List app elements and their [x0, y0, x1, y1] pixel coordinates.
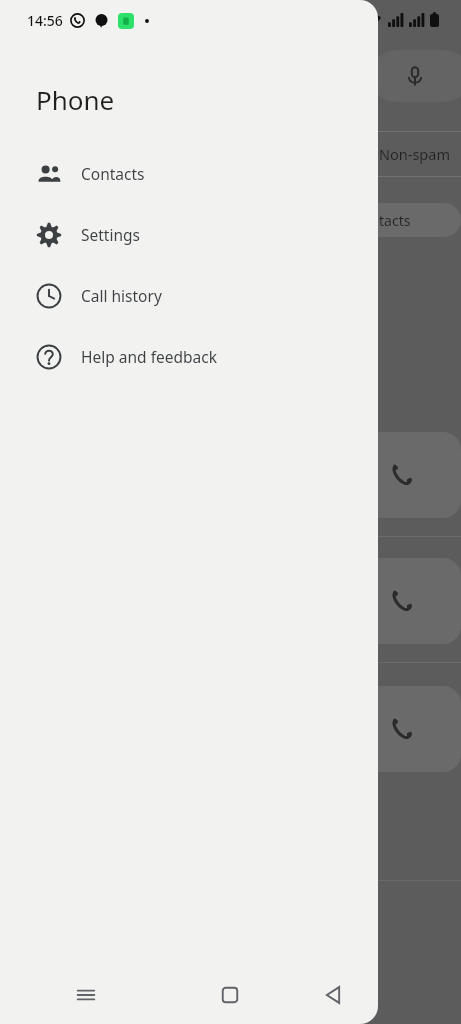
button[interactable]: Call history	[0, 265, 378, 326]
staticText: tacts	[379, 211, 411, 230]
button[interactable]: Back	[288, 966, 378, 1024]
staticText: 14:56	[27, 11, 63, 30]
staticText: Settings	[81, 224, 140, 245]
button[interactable]: Home	[172, 966, 288, 1024]
staticText: Non-spam	[379, 144, 450, 164]
button[interactable]: Call	[360, 686, 461, 772]
staticText: Contacts	[81, 163, 145, 184]
staticText: Call history	[81, 285, 162, 306]
button[interactable]: Call	[360, 432, 461, 518]
button[interactable]: Voice search	[370, 50, 461, 102]
staticText: Phone	[36, 82, 115, 117]
button[interactable]: Contacts	[0, 143, 378, 204]
button[interactable]: Settings	[0, 204, 378, 265]
button[interactable]: tacts	[355, 203, 461, 237]
button[interactable]: Recents	[0, 966, 172, 1024]
button[interactable]: Call	[360, 558, 461, 644]
button[interactable]: Help and feedback	[0, 326, 378, 387]
staticText: Help and feedback	[81, 346, 217, 367]
